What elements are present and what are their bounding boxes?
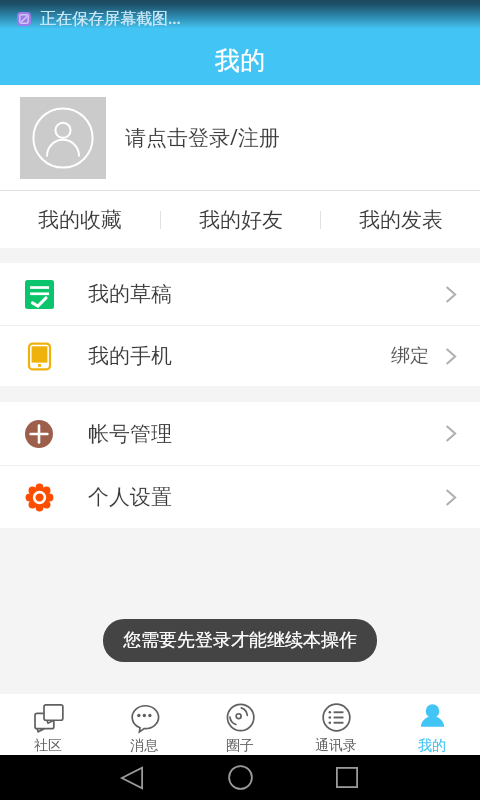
button[interactable]: 请点击登录/注册 (0, 85, 480, 190)
button[interactable]: 我的草稿 (0, 263, 480, 325)
button[interactable]: 圈子 (192, 694, 288, 755)
staticText: 圈子 (226, 737, 254, 755)
staticText: 我的草稿 (88, 281, 172, 307)
button[interactable]: Recents (323, 755, 371, 800)
button[interactable]: 我的手机 (0, 326, 480, 386)
button[interactable]: 个人设置 (0, 466, 480, 528)
staticText: 正在保存屏幕截图... (40, 7, 181, 29)
button[interactable]: 我的发表 (321, 191, 480, 248)
staticText: 我的 (215, 45, 265, 76)
staticText: 我的好友 (199, 207, 283, 233)
staticText: 帐号管理 (88, 421, 172, 447)
button[interactable]: Back (108, 755, 156, 800)
button[interactable]: 消息 (96, 694, 192, 755)
staticText: 您需要先登录才能继续本操作 (123, 629, 357, 652)
staticText: 社区 (34, 737, 62, 755)
button[interactable]: 我的好友 (161, 191, 320, 248)
staticText: 我的收藏 (38, 207, 122, 233)
staticText: 我的 (418, 737, 446, 755)
button[interactable]: 帐号管理 (0, 402, 480, 465)
staticText: 通讯录 (315, 737, 357, 755)
button[interactable]: 我的收藏 (0, 191, 160, 248)
button[interactable]: 社区 (0, 694, 96, 755)
button[interactable]: 通讯录 (288, 694, 384, 755)
staticText: 绑定 (391, 344, 429, 368)
button[interactable]: Home (216, 755, 264, 800)
staticText: 我的手机 (88, 343, 172, 369)
staticText: 个人设置 (88, 484, 172, 510)
staticText: 请点击登录/注册 (125, 123, 280, 152)
button[interactable]: 我的 (384, 694, 480, 755)
staticText: 我的发表 (359, 207, 443, 233)
staticText: 消息 (130, 737, 158, 755)
